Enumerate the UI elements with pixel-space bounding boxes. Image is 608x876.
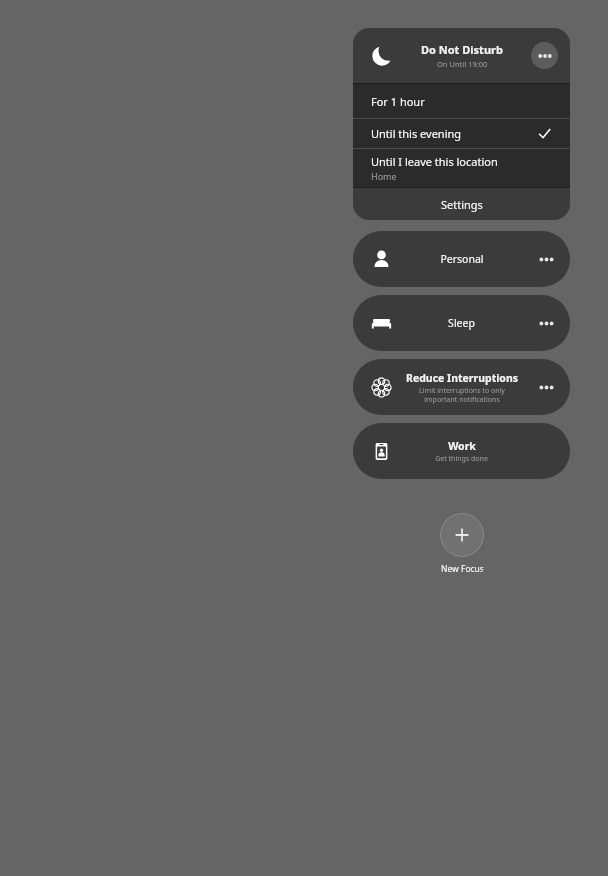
- staticText: For 1 hour: [371, 94, 425, 109]
- staticText: New Focus: [441, 563, 484, 575]
- staticText: Get things done: [435, 454, 488, 464]
- staticText: Reduce Interruptions: [406, 371, 518, 385]
- staticText: Settings: [441, 197, 483, 212]
- button[interactable]: For 1 hour: [353, 84, 570, 118]
- staticText: Until this evening: [371, 126, 462, 141]
- other: Personal: [371, 249, 392, 270]
- button[interactable]: More options for Personal: [532, 245, 560, 273]
- staticText: Limit interruptions to only important no…: [419, 386, 505, 404]
- other: Sleep: [371, 313, 392, 334]
- staticText: Personal: [440, 252, 484, 266]
- staticText: Do Not Disturb: [421, 42, 503, 57]
- staticText: Until I leave this location: [371, 154, 498, 169]
- button[interactable]: Until I leave this location: [353, 149, 570, 187]
- button[interactable]: Settings: [353, 188, 570, 220]
- button[interactable]: More options: [531, 42, 558, 69]
- staticText: Home: [371, 170, 397, 182]
- button[interactable]: More options for Reduce Interruptions: [532, 373, 560, 401]
- button[interactable]: Personal: [353, 231, 570, 287]
- staticText: On Until 19:00: [437, 59, 488, 69]
- button[interactable]: Work: [353, 423, 570, 479]
- button[interactable]: Until this evening: [353, 119, 570, 148]
- button[interactable]: New Focus: [440, 513, 484, 575]
- staticText: Work: [448, 439, 476, 453]
- button[interactable]: Reduce Interruptions: [353, 359, 570, 415]
- button[interactable]: Do Not Disturb: [353, 28, 570, 83]
- other: Work: [371, 441, 392, 462]
- other: Reduce Interruptions: [371, 377, 392, 398]
- button[interactable]: Sleep: [353, 295, 570, 351]
- staticText: Sleep: [448, 316, 475, 330]
- button[interactable]: More options for Sleep: [532, 309, 560, 337]
